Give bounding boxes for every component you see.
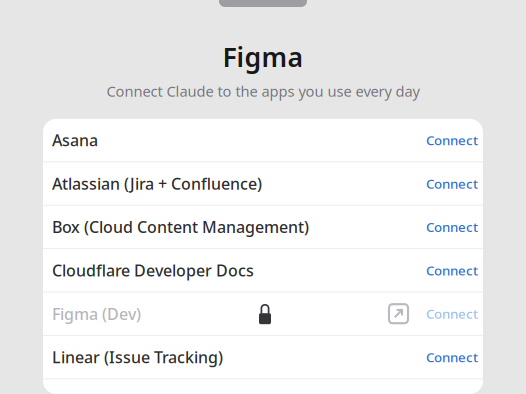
staticText: Box (Cloud Content Management) (52, 216, 309, 237)
staticText: Atlassian (Jira + Confluence) (52, 173, 262, 194)
staticText: Connect Claude to the apps you use every… (106, 81, 419, 101)
staticText: Connect (426, 218, 478, 236)
button[interactable]: Figma (Dev) (43, 292, 483, 335)
staticText: Figma (Dev) (52, 303, 141, 324)
staticText: Connect (426, 261, 478, 279)
staticText: Connect (426, 305, 478, 322)
staticText: Figma (222, 39, 303, 74)
staticText: Linear (Issue Tracking) (52, 346, 223, 368)
button[interactable]: Linear (Issue Tracking) (43, 336, 483, 378)
staticText: Connect (426, 348, 478, 366)
staticText: Connect (426, 175, 478, 192)
button[interactable]: Atlassian (Jira + Confluence) (43, 162, 483, 205)
button[interactable]: Asana (43, 119, 483, 161)
button[interactable]: Cloudflare Developer Docs (43, 249, 483, 291)
staticText: Cloudflare Developer Docs (52, 260, 254, 281)
staticText: Asana (52, 129, 98, 151)
button[interactable]: Box (Cloud Content Management) (43, 206, 483, 248)
staticText: Connect (426, 131, 478, 149)
